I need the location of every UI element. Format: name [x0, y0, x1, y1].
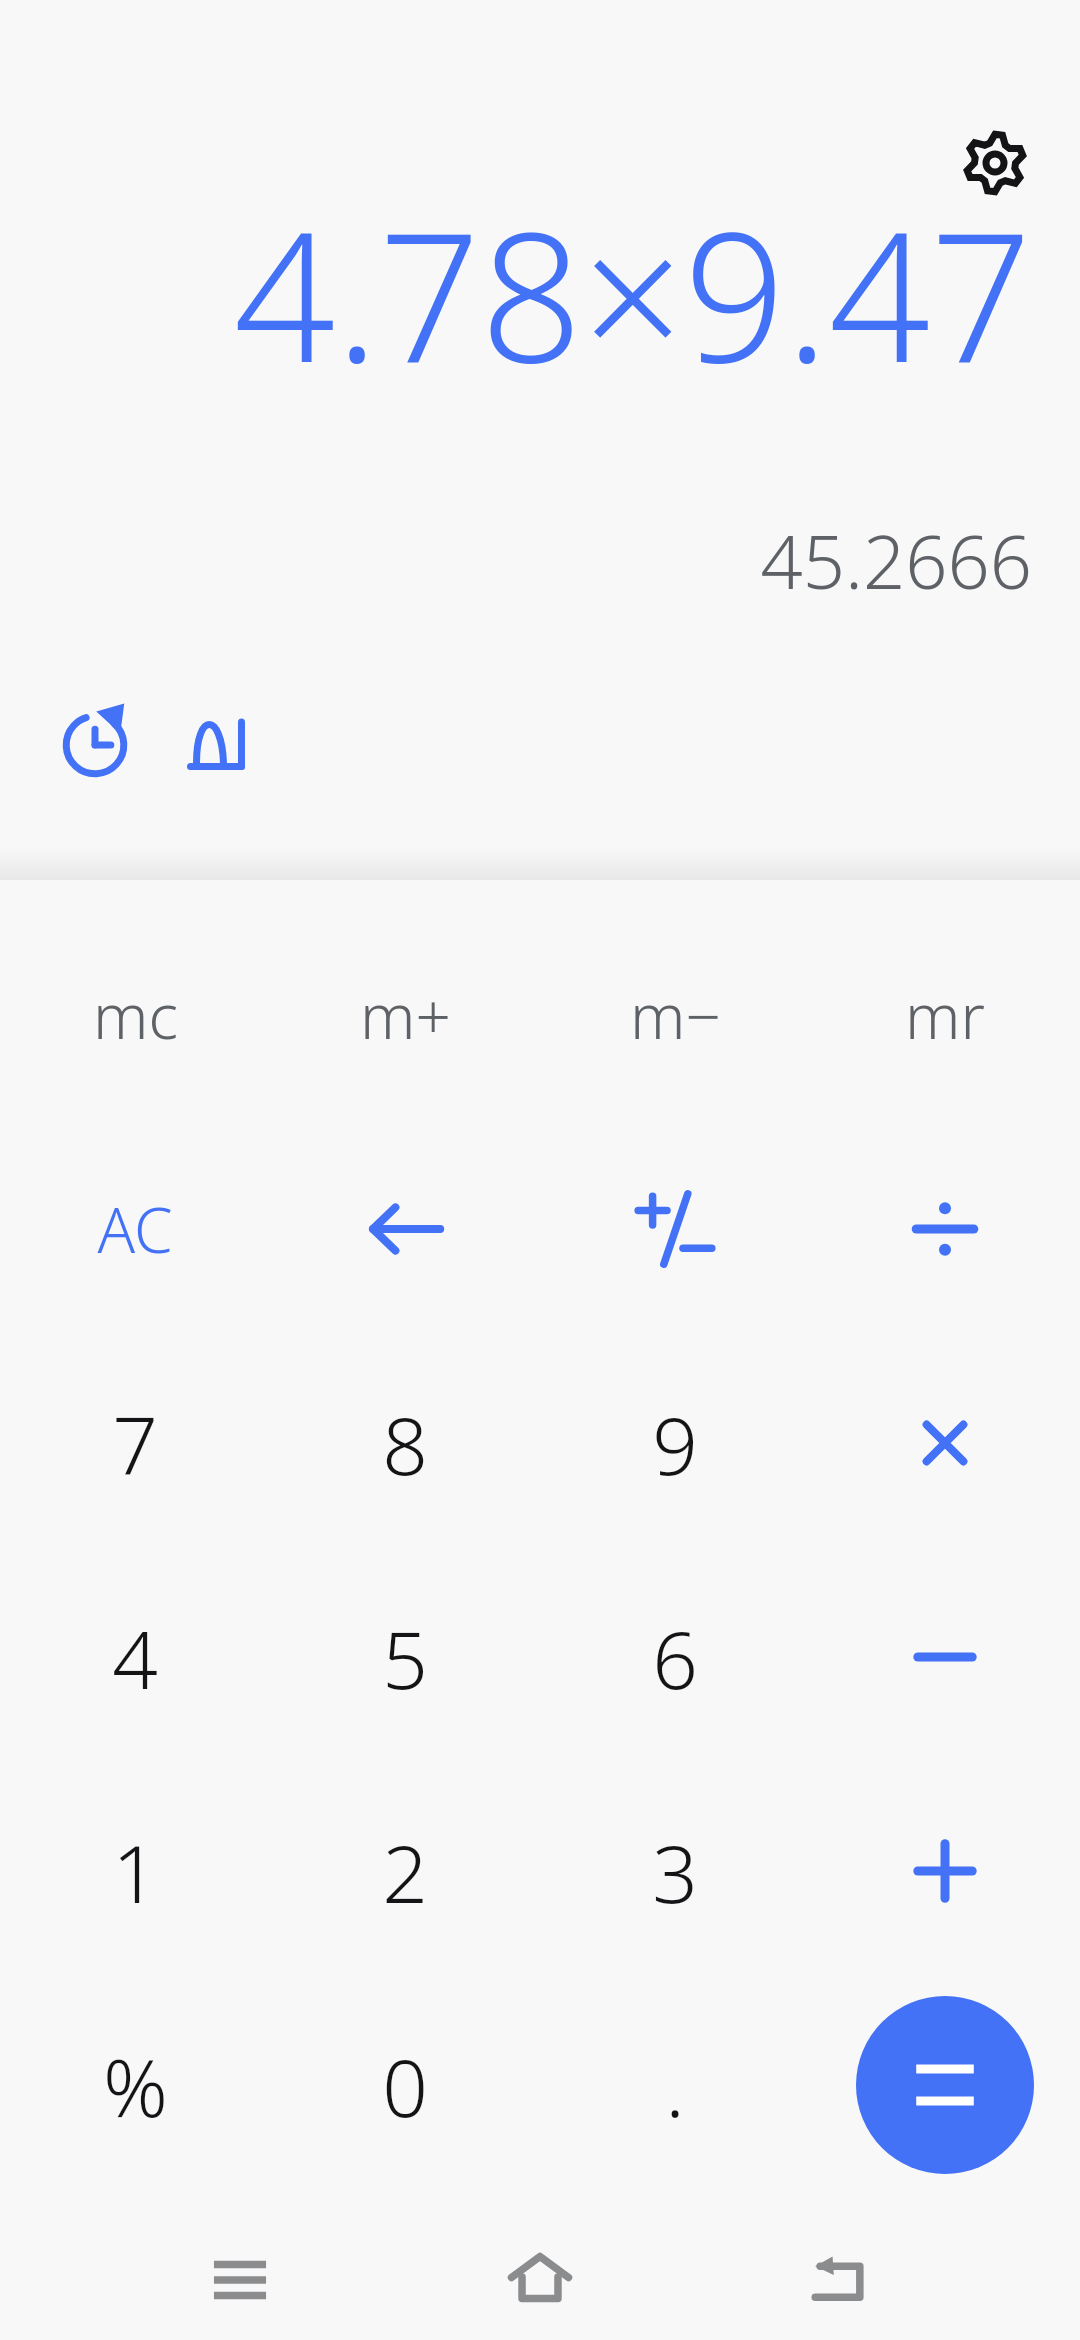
button[interactable]: % — [0, 1978, 270, 2192]
button[interactable]: 8 — [270, 1336, 540, 1550]
button[interactable]: 9 — [540, 1336, 810, 1550]
button[interactable]: Recents — [180, 2220, 300, 2340]
staticText: . — [665, 2031, 685, 2140]
button[interactable]: m− — [540, 908, 810, 1122]
button[interactable]: mr — [810, 908, 1080, 1122]
button[interactable]: Graph — [170, 698, 264, 792]
staticText: m+ — [360, 973, 451, 1057]
button[interactable]: Plus — [810, 1764, 1080, 1978]
staticText: 9 — [652, 1389, 698, 1498]
button[interactable]: 2 — [270, 1764, 540, 1978]
staticText: 8 — [382, 1389, 428, 1498]
staticText: 1 — [112, 1817, 158, 1926]
button[interactable]: Divide — [810, 1122, 1080, 1336]
staticText: 4.78×9.47 — [0, 172, 1032, 414]
button[interactable]: Settings — [948, 116, 1042, 210]
staticText: 5 — [382, 1603, 428, 1712]
staticText: AC — [97, 1187, 173, 1271]
staticText: 6 — [652, 1603, 698, 1712]
button[interactable]: Multiply — [810, 1336, 1080, 1550]
button[interactable]: AC — [0, 1122, 270, 1336]
staticText: mc — [93, 973, 178, 1057]
staticText: 3 — [652, 1817, 698, 1926]
button[interactable]: 1 — [0, 1764, 270, 1978]
button[interactable]: Home — [480, 2220, 600, 2340]
button[interactable]: Backspace — [270, 1122, 540, 1336]
button[interactable]: History — [48, 698, 142, 792]
button[interactable]: 6 — [540, 1550, 810, 1764]
button[interactable]: mc — [0, 908, 270, 1122]
staticText: 0 — [382, 2031, 428, 2140]
button[interactable]: 0 — [270, 1978, 540, 2192]
staticText: 4 — [112, 1603, 158, 1712]
button[interactable]: Equals — [810, 1978, 1080, 2192]
button[interactable]: 3 — [540, 1764, 810, 1978]
button[interactable]: Back — [780, 2220, 900, 2340]
staticText: 7 — [112, 1389, 158, 1498]
button[interactable]: m+ — [270, 908, 540, 1122]
staticText: 45.2666 — [0, 510, 1032, 611]
button[interactable]: 4 — [0, 1550, 270, 1764]
button[interactable]: 5 — [270, 1550, 540, 1764]
staticText: m− — [630, 973, 721, 1057]
button[interactable]: 7 — [0, 1336, 270, 1550]
staticText: mr — [905, 973, 985, 1057]
button[interactable]: Minus — [810, 1550, 1080, 1764]
staticText: 2 — [382, 1817, 428, 1926]
button[interactable]: Plus minus — [540, 1122, 810, 1336]
button[interactable]: . — [540, 1978, 810, 2192]
staticText: % — [103, 2031, 168, 2140]
